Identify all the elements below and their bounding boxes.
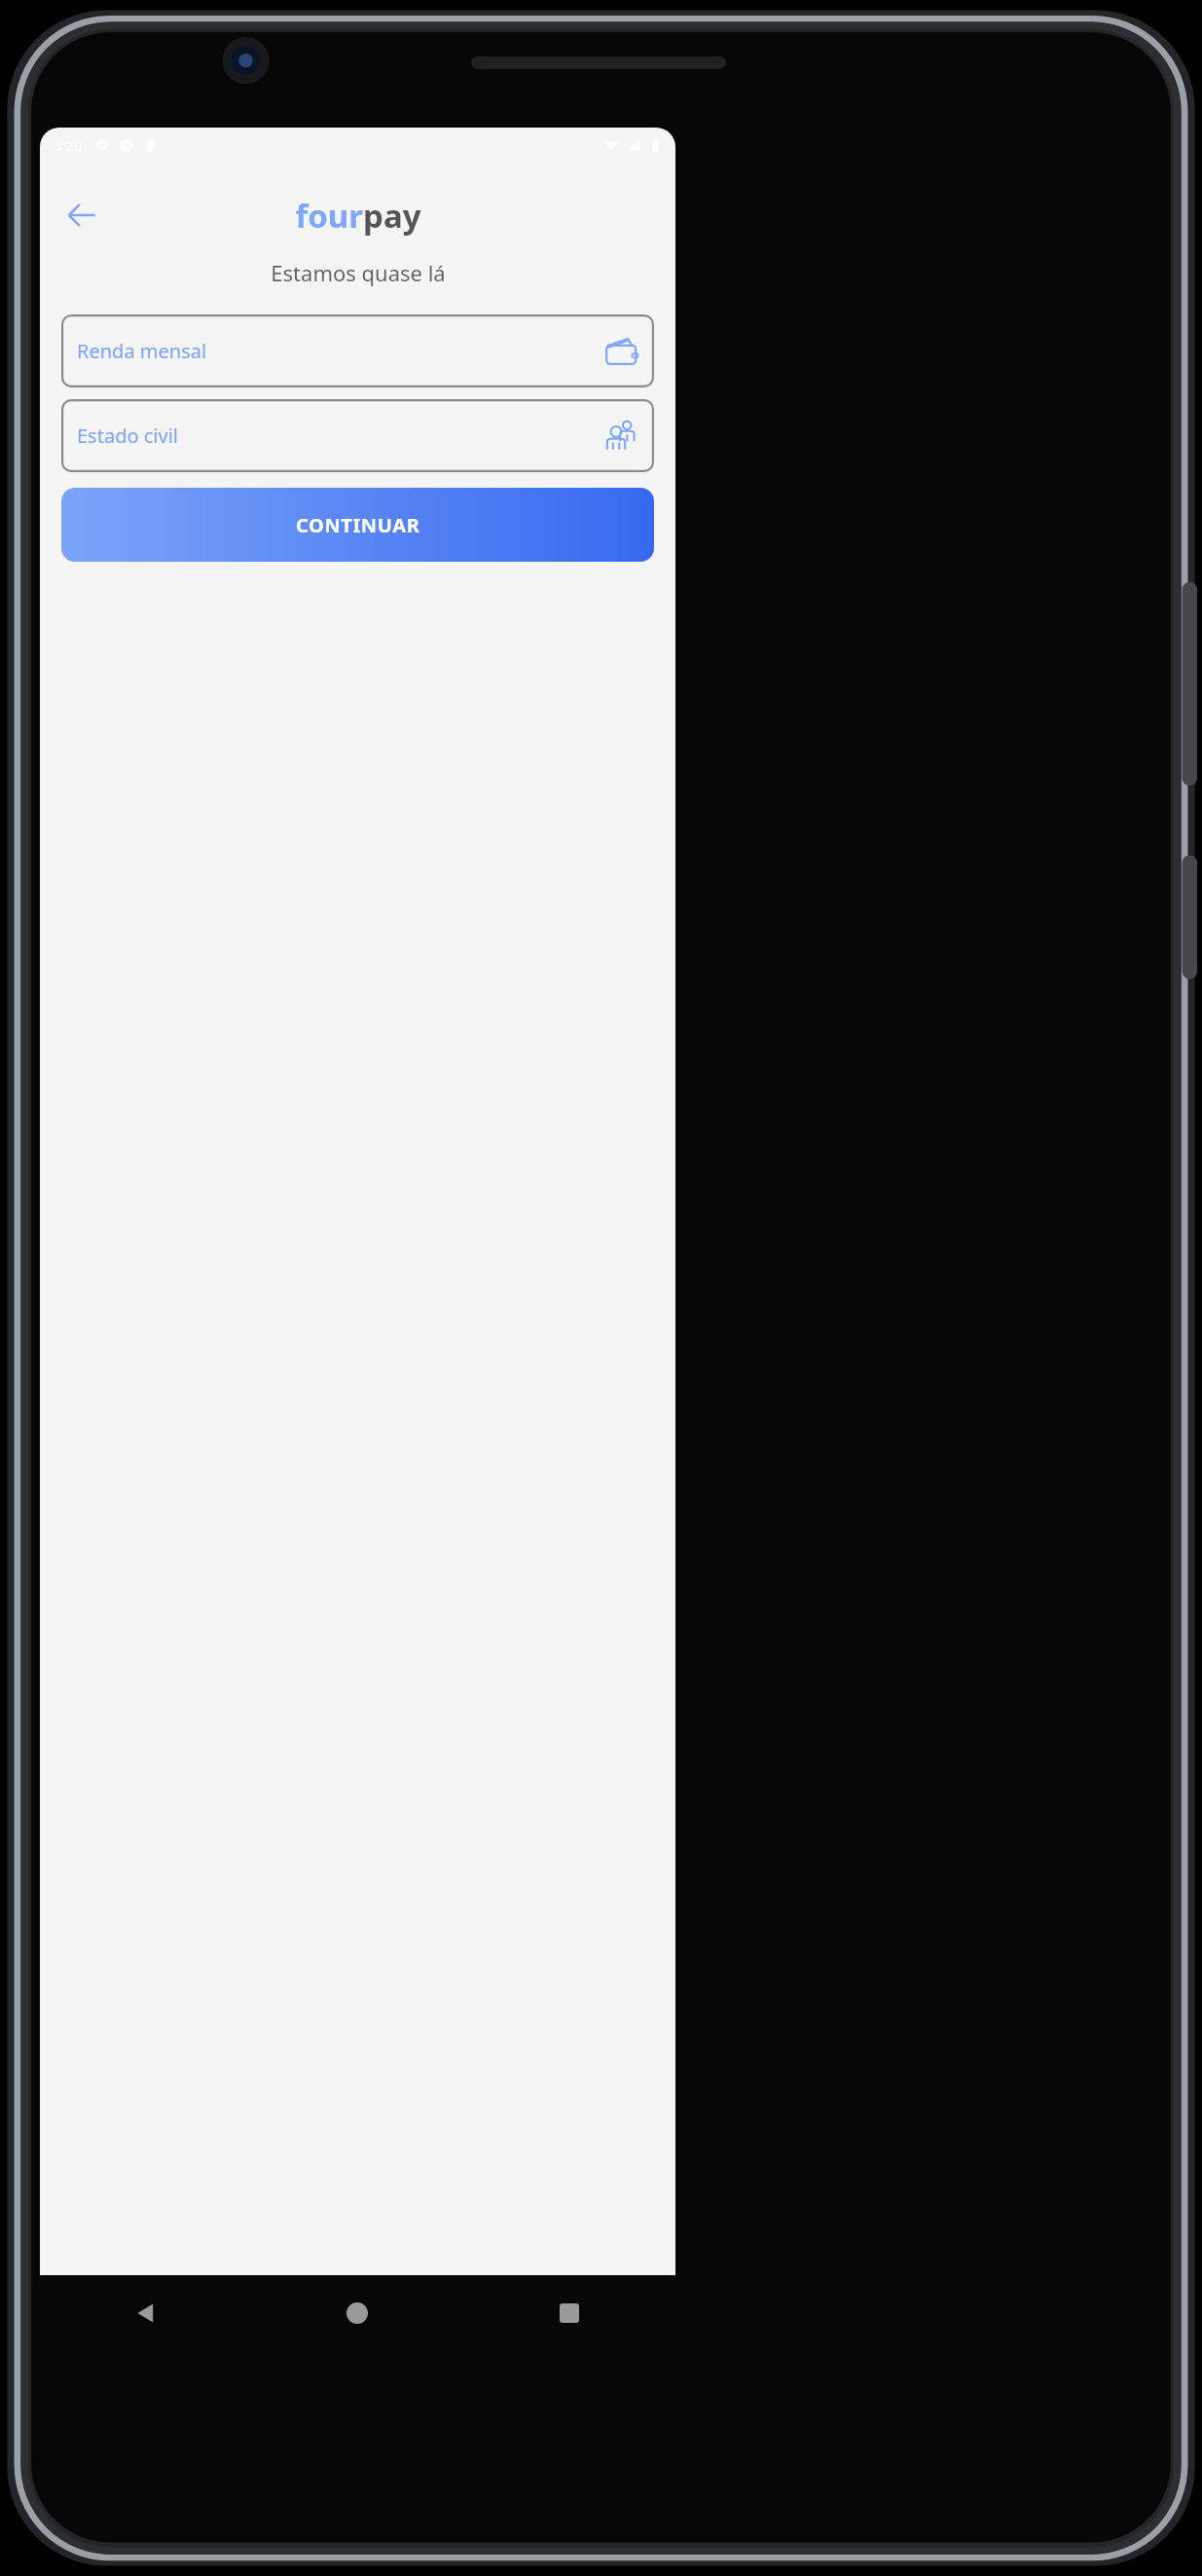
button[interactable]: Estado civil — [61, 399, 654, 472]
staticText: fourpay — [295, 194, 421, 238]
staticText: 3:20 — [54, 135, 83, 155]
staticText: Estamos quase lá — [271, 258, 446, 287]
button[interactable]: Recent apps — [463, 2275, 675, 2351]
button[interactable]: Renda mensal — [61, 314, 654, 387]
button[interactable]: CONTINUAR — [61, 488, 654, 562]
staticText: CONTINUAR — [296, 512, 420, 538]
button[interactable]: Home — [251, 2275, 463, 2351]
staticText: Estado civil — [77, 423, 178, 449]
staticText: Renda mensal — [77, 338, 207, 364]
button[interactable]: Back — [56, 190, 107, 240]
button[interactable]: Back — [40, 2275, 251, 2351]
